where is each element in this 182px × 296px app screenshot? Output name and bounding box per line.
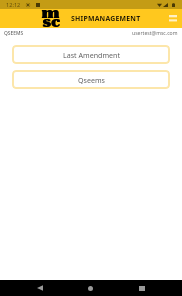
staticText: Last Amendment [63, 50, 120, 60]
staticText: sc [42, 13, 60, 30]
staticText: m [41, 4, 59, 21]
staticText: 12:12 [6, 1, 21, 9]
button[interactable]: Back [14, 280, 65, 296]
button[interactable]: Qseems [12, 70, 170, 89]
staticText: QSEEMS [4, 30, 24, 37]
button[interactable]: Open navigation menu [166, 9, 180, 28]
staticText: m [41, 4, 59, 21]
button[interactable]: Recent apps [116, 280, 167, 296]
staticText: SHIPMANAGEMENT [71, 14, 141, 23]
button[interactable]: Home [65, 280, 116, 296]
staticText: Qseems [78, 75, 105, 85]
staticText: sc [42, 13, 60, 30]
staticText: usertest@msc.com [132, 30, 178, 37]
button[interactable]: Last Amendment [12, 45, 170, 64]
